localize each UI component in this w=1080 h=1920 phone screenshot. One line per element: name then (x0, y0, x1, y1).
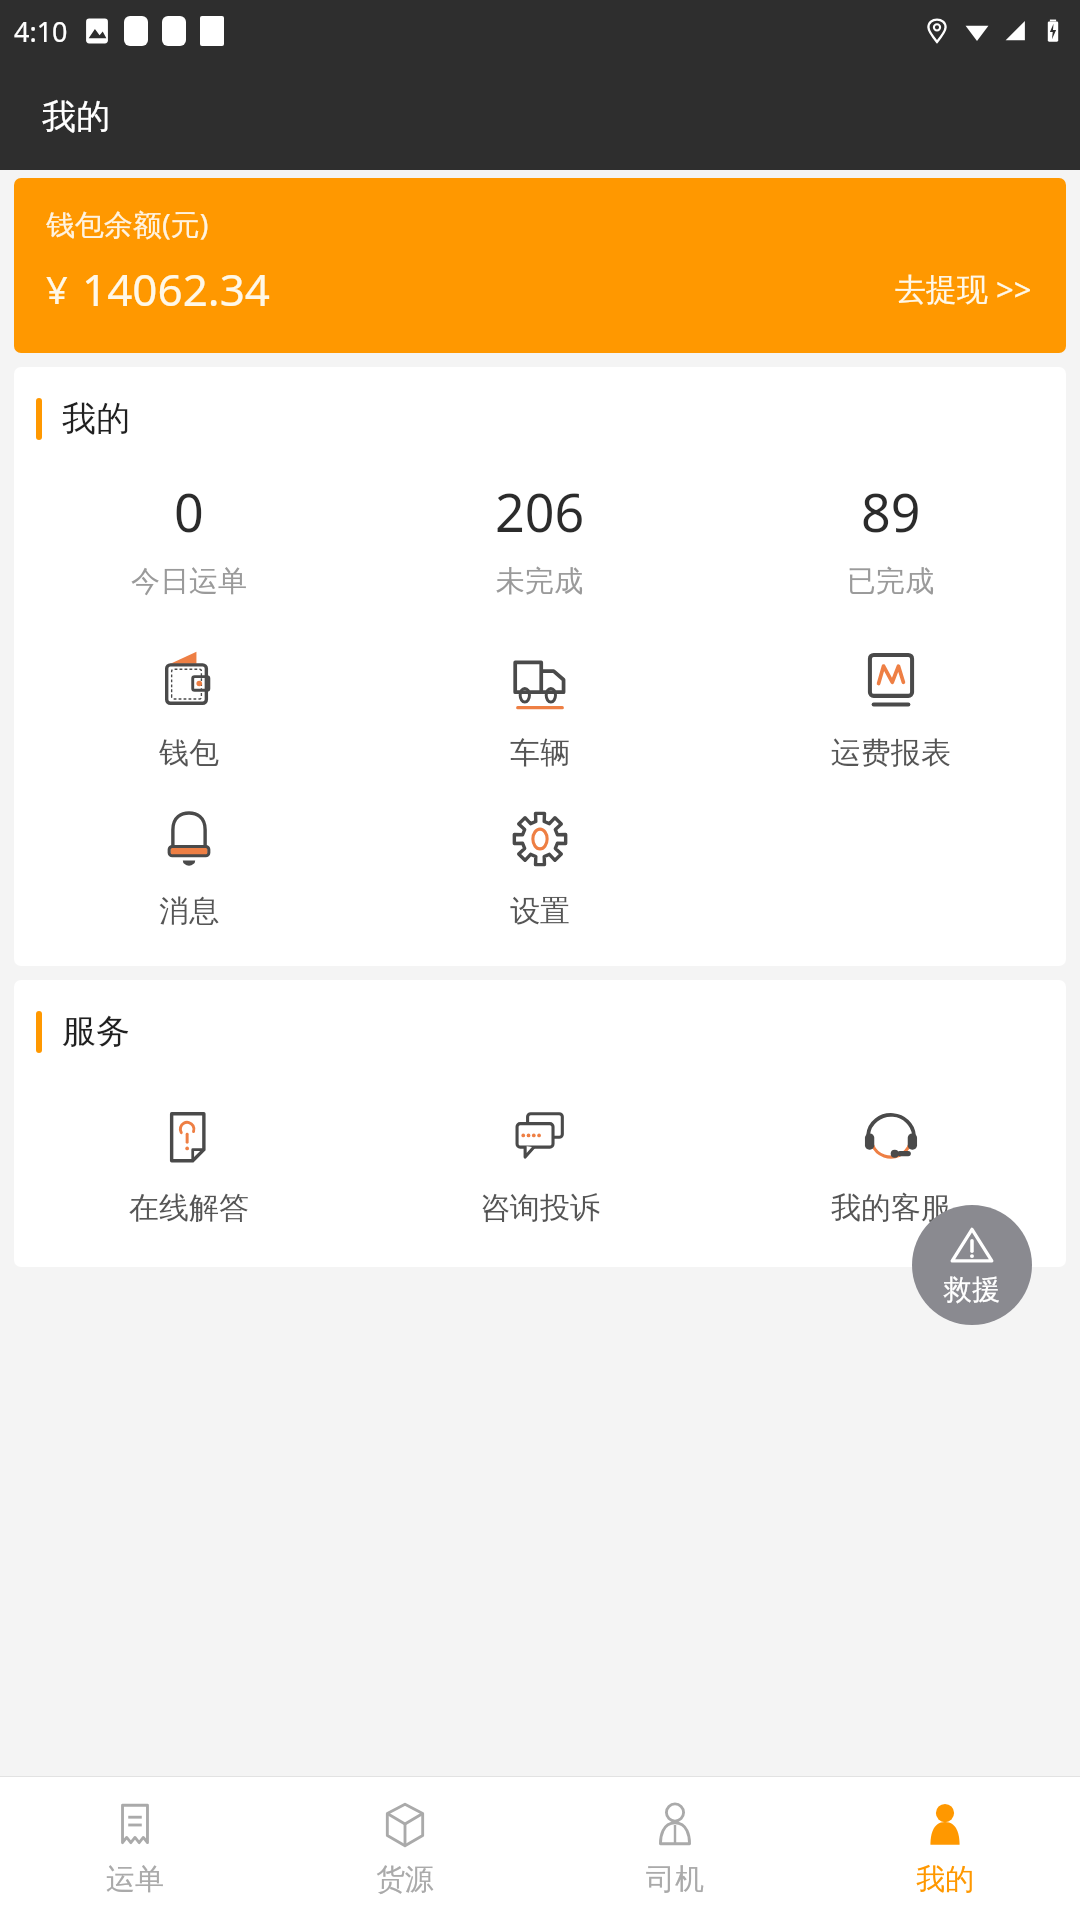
staticText: 我的 (42, 95, 110, 138)
staticText: 我的 (916, 1861, 974, 1898)
staticText: 货源 (376, 1861, 434, 1898)
button[interactable]: 89 (715, 472, 1066, 604)
staticText: 消息 (159, 892, 219, 930)
button[interactable]: 车辆 (364, 650, 715, 772)
staticText: 已完成 (847, 563, 934, 600)
button[interactable]: 设置 (364, 808, 715, 930)
button[interactable]: 我的客服 (715, 1105, 1066, 1227)
staticText: 0 (174, 476, 204, 547)
staticText: 钱包余额(元) (46, 204, 209, 244)
staticText: 今日运单 (131, 563, 247, 600)
button[interactable]: 消息 (14, 808, 364, 930)
staticText: 89 (861, 476, 921, 547)
button[interactable]: 司机 (540, 1777, 810, 1920)
button[interactable]: 货源 (270, 1777, 540, 1920)
button[interactable]: 去提现 (891, 264, 1036, 314)
staticText: 运单 (106, 1861, 164, 1898)
staticText: 设置 (510, 892, 570, 930)
staticText: 在线解答 (129, 1189, 249, 1227)
button[interactable]: 咨询投诉 (364, 1105, 715, 1227)
staticText: 车辆 (510, 734, 570, 772)
button[interactable]: 206 (364, 472, 715, 604)
staticText: 未完成 (496, 563, 583, 600)
button[interactable]: 在线解答 (14, 1105, 364, 1227)
staticText: 司机 (646, 1861, 704, 1898)
staticText: ¥ (46, 263, 68, 315)
staticText: 钱包 (159, 734, 219, 772)
staticText: 我的 (62, 397, 130, 440)
staticText: 206 (495, 476, 585, 547)
button[interactable]: 钱包 (14, 650, 364, 772)
staticText: 4:10 (14, 13, 68, 50)
button[interactable]: 0 (14, 472, 364, 604)
staticText: >> (996, 268, 1032, 310)
staticText: 去提现 (895, 270, 988, 309)
staticText: 我的客服 (831, 1189, 951, 1227)
staticText: 咨询投诉 (480, 1189, 600, 1227)
button[interactable]: 运费报表 (715, 650, 1066, 772)
button[interactable]: 我的 (810, 1777, 1080, 1920)
staticText: 救援 (944, 1272, 1000, 1307)
button[interactable]: 钱包余额(元) (14, 178, 1066, 353)
button[interactable]: 救援 Rescue (912, 1205, 1032, 1325)
staticText: 运费报表 (831, 734, 951, 772)
staticText: 服务 (62, 1010, 130, 1053)
staticText: 14062.34 (82, 259, 270, 319)
button[interactable]: 运单 (0, 1777, 270, 1920)
